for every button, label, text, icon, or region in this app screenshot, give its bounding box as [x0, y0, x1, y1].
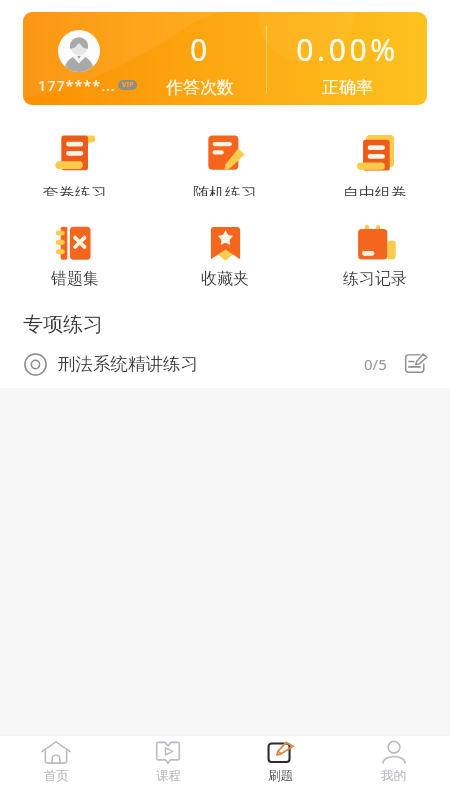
button[interactable]: 首页: [0, 736, 112, 800]
staticText: 错题集: [51, 269, 99, 287]
staticText: 0/5: [364, 354, 387, 374]
staticText: 收藏夹: [201, 269, 249, 287]
button[interactable]: 课程: [112, 736, 224, 800]
staticText: 刑法系统精讲练习: [58, 353, 198, 375]
button[interactable]: 错题集: [0, 196, 150, 287]
staticText: 专项练习: [23, 312, 103, 337]
button[interactable]: 套卷练习: [0, 105, 150, 196]
staticText: 正确率: [322, 77, 373, 98]
staticText: 自由组卷: [343, 184, 407, 196]
button[interactable]: 收藏夹: [150, 196, 300, 287]
button[interactable]: 我的: [337, 736, 450, 800]
button[interactable]: 177****...: [23, 12, 427, 105]
staticText: 0: [190, 29, 211, 70]
button[interactable]: 刷题: [224, 736, 337, 800]
staticText: 练习记录: [343, 269, 407, 287]
staticText: 我的: [381, 768, 406, 784]
staticText: VIP: [122, 80, 134, 90]
staticText: 随机练习: [193, 184, 257, 196]
button[interactable]: 刑法系统精讲练习: [0, 340, 450, 388]
button[interactable]: 随机练习: [150, 105, 300, 196]
button[interactable]: 自由组卷: [300, 105, 450, 196]
staticText: 177****...: [38, 75, 116, 95]
staticText: 首页: [44, 768, 69, 784]
staticText: 0.00%: [296, 29, 399, 70]
staticText: 刷题: [268, 768, 293, 784]
staticText: 课程: [156, 768, 181, 784]
staticText: 套卷练习: [43, 184, 107, 196]
staticText: 作答次数: [166, 77, 234, 98]
button[interactable]: 编辑: [403, 352, 430, 376]
button[interactable]: 练习记录: [300, 196, 450, 287]
